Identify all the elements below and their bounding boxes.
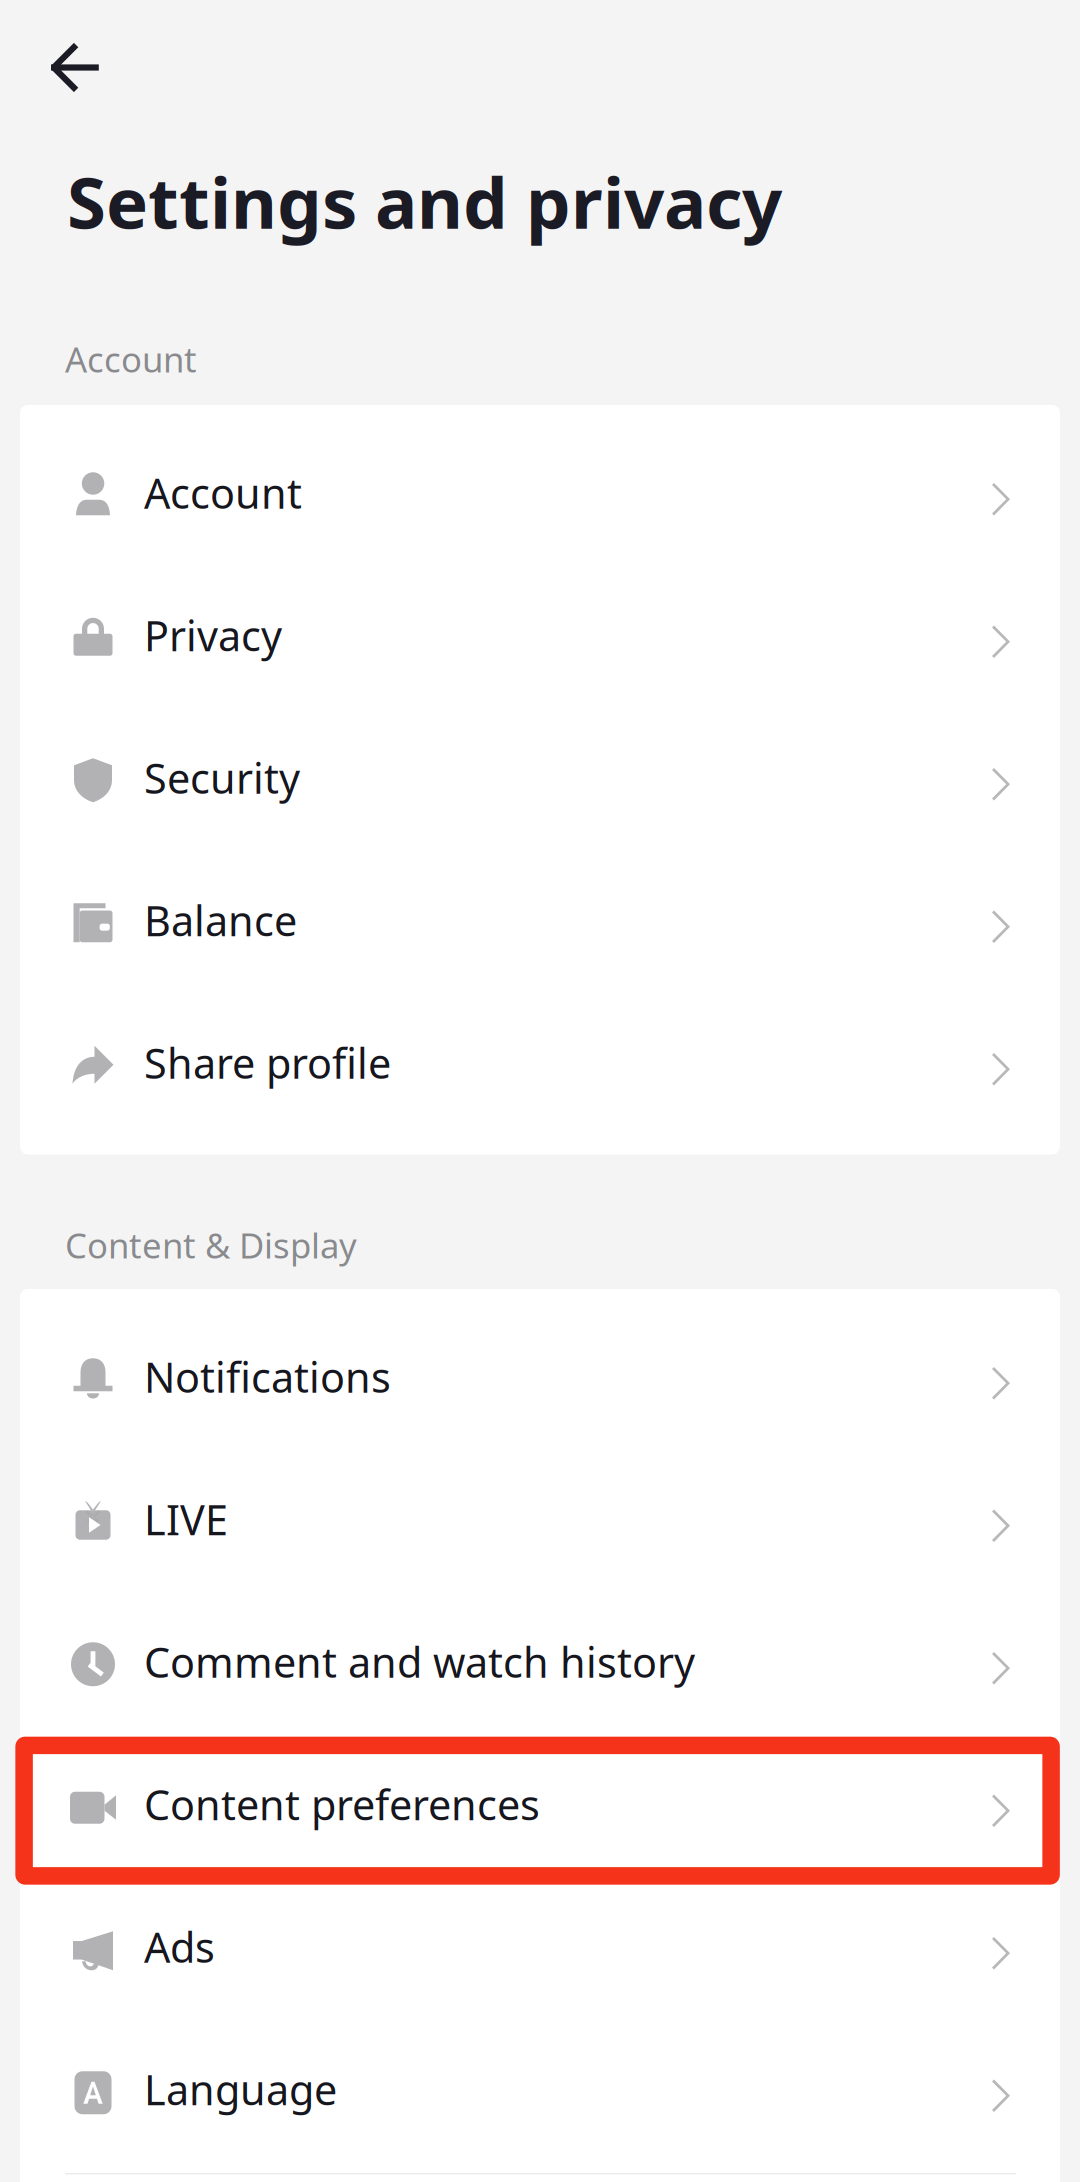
button[interactable]: Privacy bbox=[20, 570, 1060, 713]
button[interactable]: Content preferences bbox=[20, 1739, 1060, 1882]
staticText: LIVE bbox=[144, 1492, 228, 1547]
staticText: Security bbox=[144, 750, 300, 805]
staticText: Account bbox=[65, 336, 197, 382]
button[interactable]: Notifications bbox=[20, 1312, 1060, 1454]
staticText: Settings and privacy bbox=[67, 154, 782, 248]
button[interactable]: LIVE bbox=[20, 1454, 1060, 1597]
staticText: Account bbox=[144, 465, 302, 520]
button[interactable]: Ads bbox=[20, 1882, 1060, 2024]
button[interactable]: Comment and watch history bbox=[20, 1597, 1060, 1739]
button[interactable]: Account bbox=[20, 428, 1060, 570]
button[interactable]: Balance bbox=[20, 855, 1060, 998]
staticText: Privacy bbox=[144, 608, 282, 663]
button[interactable]: Back bbox=[19, 22, 129, 112]
staticText: Content & Display bbox=[65, 1222, 357, 1268]
button[interactable]: Share profile bbox=[20, 998, 1060, 1140]
staticText: Ads bbox=[144, 1919, 215, 1974]
staticText: Content preferences bbox=[144, 1777, 540, 1832]
staticText: Language bbox=[144, 2062, 337, 2117]
staticText: Balance bbox=[144, 893, 297, 948]
staticText: Comment and watch history bbox=[144, 1634, 695, 1689]
staticText: Share profile bbox=[144, 1035, 391, 1090]
button[interactable]: Security bbox=[20, 713, 1060, 855]
button[interactable]: Language bbox=[20, 2024, 1060, 2167]
staticText: Notifications bbox=[144, 1349, 391, 1404]
